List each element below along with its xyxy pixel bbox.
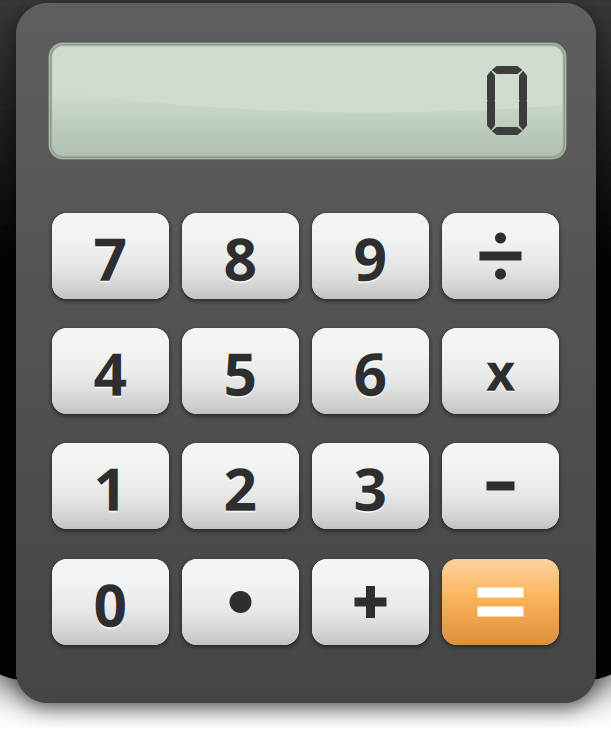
button[interactable]: Multiply	[442, 328, 559, 414]
button[interactable]: Divide	[442, 213, 559, 299]
staticText: 0	[93, 566, 127, 644]
button[interactable]: 0	[52, 559, 169, 645]
staticText: 4	[93, 334, 127, 412]
staticText: 1	[93, 450, 127, 528]
button[interactable]: 1	[52, 443, 169, 529]
button[interactable]: 8	[182, 213, 299, 299]
staticText: 9	[353, 220, 387, 298]
staticText: 6	[353, 334, 387, 412]
button[interactable]: 7	[52, 213, 169, 299]
staticText: 8	[223, 220, 257, 298]
button[interactable]: 3	[312, 443, 429, 529]
staticText: 0	[93, 565, 127, 643]
button[interactable]: 6	[312, 328, 429, 414]
button[interactable]: 5	[182, 328, 299, 414]
staticText: 7	[93, 220, 127, 298]
staticText: 7	[93, 219, 127, 297]
staticText: 6	[353, 335, 387, 413]
button[interactable]: 4	[52, 328, 169, 414]
button[interactable]: Plus	[312, 559, 429, 645]
staticText: x	[486, 339, 515, 406]
button[interactable]: Equals	[442, 559, 559, 645]
staticText: x	[486, 337, 515, 405]
staticText: 2	[223, 450, 257, 528]
staticText: 3	[353, 449, 387, 527]
button[interactable]: 2	[182, 443, 299, 529]
staticText: 2	[223, 449, 257, 527]
staticText: 5	[223, 334, 257, 412]
staticText: 9	[353, 219, 387, 297]
staticText: 5	[223, 335, 257, 413]
staticText: 3	[353, 450, 387, 528]
staticText: 8	[223, 219, 257, 297]
button[interactable]: 9	[312, 213, 429, 299]
staticText: 1	[93, 449, 127, 527]
button[interactable]: Decimal point	[182, 559, 299, 645]
button[interactable]: Minus	[442, 443, 559, 529]
staticText: 4	[93, 335, 127, 413]
